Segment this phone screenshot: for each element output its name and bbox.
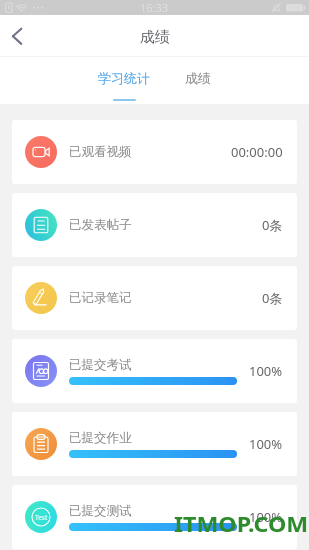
staticText: Test xyxy=(35,513,48,522)
staticText: 100% xyxy=(249,362,283,380)
staticText: 0条 xyxy=(262,289,283,307)
button[interactable]: 成绩 xyxy=(185,57,211,104)
staticText: 已提交考试 xyxy=(69,357,132,373)
button[interactable]: Back xyxy=(0,15,38,57)
button[interactable]: 已提交作业 xyxy=(12,412,297,476)
staticText: 00:00:00 xyxy=(231,143,283,161)
button[interactable]: 学习统计 xyxy=(98,57,150,104)
button[interactable]: 已记录笔记 xyxy=(12,266,297,330)
staticText: 学习统计 xyxy=(98,70,150,86)
staticText: 成绩 xyxy=(140,28,170,47)
button[interactable]: 已提交考试 xyxy=(12,339,297,403)
staticText: ITMOP.COM xyxy=(174,509,309,538)
staticText: 100% xyxy=(249,508,283,526)
button[interactable]: 已观看视频 xyxy=(12,120,297,184)
staticText: 0条 xyxy=(262,216,283,234)
button[interactable]: 已发表帖子 xyxy=(12,193,297,257)
staticText: 16:33 xyxy=(140,0,169,15)
staticText: 已观看视频 xyxy=(69,144,132,160)
staticText: 已提交作业 xyxy=(69,430,132,446)
staticText: 100% xyxy=(249,435,283,453)
staticText: 已记录笔记 xyxy=(69,290,132,306)
button[interactable]: Test xyxy=(12,485,297,549)
staticText: 已发表帖子 xyxy=(69,217,132,233)
staticText: 已提交测试 xyxy=(69,503,132,519)
staticText: 成绩 xyxy=(185,70,211,86)
